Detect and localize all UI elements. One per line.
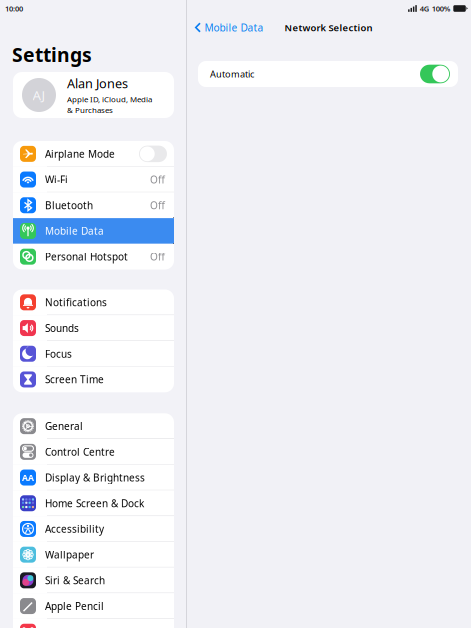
staticText: Notifications bbox=[45, 295, 107, 309]
staticText: 10:00 bbox=[5, 3, 23, 14]
button[interactable]: General bbox=[13, 413, 174, 439]
button[interactable]: AA bbox=[13, 465, 174, 490]
button[interactable]: Siri & Search bbox=[13, 567, 174, 593]
button[interactable]: Wi-Fi bbox=[13, 167, 174, 192]
staticText: Airplane Mode bbox=[45, 147, 115, 161]
staticText: Mobile Data bbox=[45, 224, 104, 238]
button[interactable]: Personal Hotspot bbox=[13, 244, 174, 269]
staticText: Siri & Search bbox=[45, 573, 105, 587]
staticText: Screen Time bbox=[45, 373, 104, 386]
staticText: Sounds bbox=[45, 321, 79, 335]
button[interactable]: Sounds bbox=[13, 315, 174, 341]
button[interactable]: Screen Time bbox=[13, 367, 174, 392]
button[interactable]: Accessibility bbox=[13, 516, 174, 542]
staticText: Settings bbox=[12, 41, 92, 68]
staticText: Display & Brightness bbox=[45, 471, 145, 484]
button[interactable]: Control Centre bbox=[13, 439, 174, 465]
staticText: Accessibility bbox=[45, 522, 104, 536]
button[interactable]: Focus bbox=[13, 341, 174, 367]
staticText: Mobile Data bbox=[204, 21, 263, 34]
staticText: Control Centre bbox=[45, 445, 115, 459]
staticText: AA bbox=[22, 472, 34, 483]
staticText: Apple ID, iCloud, Media bbox=[67, 94, 152, 105]
button[interactable]: Wallpaper bbox=[13, 542, 174, 567]
staticText: & Purchases bbox=[67, 105, 113, 115]
staticText: General bbox=[45, 419, 83, 433]
staticText: 4G 100% bbox=[420, 3, 451, 14]
button[interactable]: Mobile Data bbox=[186, 15, 263, 40]
button[interactable]: Notifications bbox=[13, 289, 174, 315]
button[interactable]: Airplane Mode bbox=[13, 141, 174, 167]
button[interactable]: Bluetooth bbox=[13, 192, 174, 218]
button[interactable]: Mobile Data bbox=[13, 218, 174, 244]
staticText: Focus bbox=[45, 347, 72, 360]
staticText: AJ bbox=[32, 86, 45, 104]
button[interactable]: AJ bbox=[13, 72, 174, 118]
staticText: Off bbox=[150, 198, 165, 212]
staticText: Wi-Fi bbox=[45, 173, 68, 186]
staticText: Off bbox=[150, 173, 165, 186]
button[interactable]: Home Screen & Dock bbox=[13, 490, 174, 516]
staticText: Alan Jones bbox=[67, 75, 128, 92]
staticText: Bluetooth bbox=[45, 198, 93, 212]
button[interactable]: Face ID & Passcode bbox=[13, 619, 174, 628]
staticText: Home Screen & Dock bbox=[45, 496, 144, 510]
staticText: Network Selection bbox=[284, 21, 372, 34]
button[interactable]: Apple Pencil bbox=[13, 593, 174, 619]
staticText: Wallpaper bbox=[45, 548, 94, 561]
staticText: Automatic bbox=[210, 68, 254, 80]
staticText: Apple Pencil bbox=[45, 599, 104, 613]
staticText: Off bbox=[150, 250, 165, 263]
staticText: Personal Hotspot bbox=[45, 250, 128, 263]
